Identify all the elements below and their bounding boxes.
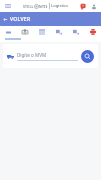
button[interactable]: Account: [89, 2, 98, 11]
staticText: NTIS: [39, 4, 48, 9]
button[interactable]: Export: [50, 26, 67, 38]
staticText: VOLVER: [10, 16, 31, 23]
button[interactable]: Digite o MVM: [17, 52, 78, 61]
button[interactable]: Notifications: [78, 1, 88, 11]
button[interactable]: Grid: [33, 26, 50, 38]
staticText: Digite o MVM: [17, 52, 47, 58]
staticText: Logistics: [51, 3, 68, 9]
staticText: STELL: [23, 4, 34, 9]
button[interactable]: Menu: [3, 1, 13, 11]
button[interactable]: Share: [67, 26, 84, 38]
button[interactable]: Dashboard: [0, 26, 16, 38]
button[interactable]: Camera: [16, 26, 33, 38]
button[interactable]: VOLVER: [0, 12, 101, 26]
button[interactable]: Search: [81, 50, 94, 63]
button[interactable]: Print: [84, 26, 101, 38]
